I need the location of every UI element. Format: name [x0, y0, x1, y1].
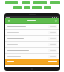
button[interactable]: [48, 31, 57, 34]
button[interactable]: [48, 37, 57, 40]
button[interactable]: [48, 25, 57, 28]
button[interactable]: [5, 24, 59, 29]
button[interactable]: [5, 42, 59, 47]
button[interactable]: Menu: [7, 19, 10, 22]
button[interactable]: Search: [54, 19, 57, 22]
button[interactable]: [5, 30, 59, 35]
button[interactable]: [5, 59, 59, 64]
button[interactable]: [48, 55, 57, 58]
button[interactable]: [5, 36, 59, 41]
button[interactable]: Menu: [5, 18, 59, 23]
button[interactable]: [5, 54, 59, 59]
button[interactable]: [5, 48, 59, 53]
button[interactable]: [48, 43, 57, 46]
button[interactable]: [48, 49, 57, 52]
